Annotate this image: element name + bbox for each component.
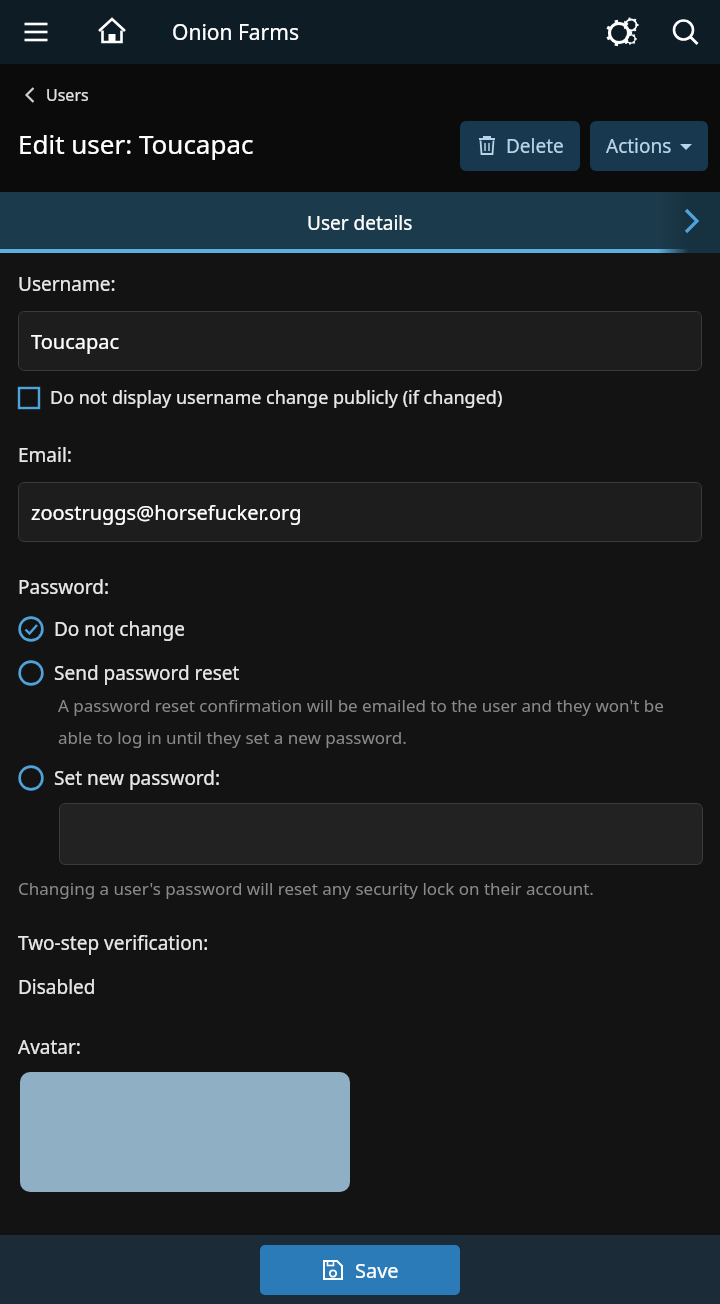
staticText: zoostruggs@horsefucker.org <box>31 499 302 526</box>
button[interactable]: Do not display username change publicly … <box>0 383 720 412</box>
staticText: Toucapac <box>31 328 120 355</box>
button[interactable]: Settings <box>598 9 644 55</box>
staticText: Avatar: <box>18 1034 81 1060</box>
staticText: A password reset confirmation will be em… <box>58 694 686 749</box>
staticText: Actions <box>606 133 672 159</box>
staticText: Password: <box>18 574 110 600</box>
button[interactable]: Menu <box>14 10 58 54</box>
button[interactable]: User details <box>0 192 720 253</box>
button[interactable]: zoostruggs@horsefucker.org <box>18 482 702 542</box>
staticText: Do not display username change publicly … <box>50 385 503 410</box>
button[interactable]: Save <box>260 1245 460 1295</box>
button[interactable]: More tabs <box>658 192 720 253</box>
staticText: Disabled <box>18 974 96 1000</box>
staticText: Username: <box>18 271 116 297</box>
button[interactable]: Set new password: <box>0 763 720 793</box>
staticText: Changing a user's password will reset an… <box>18 877 594 900</box>
staticText: User details <box>307 210 413 236</box>
button[interactable] <box>59 803 703 865</box>
button[interactable]: Search <box>662 9 708 55</box>
button[interactable]: Send password reset <box>0 658 720 688</box>
staticText: Two-step verification: <box>18 930 209 956</box>
staticText: Set new password: <box>54 765 221 791</box>
button[interactable]: Avatar <box>20 1072 350 1192</box>
staticText: Email: <box>18 442 72 468</box>
button[interactable]: Do not change <box>0 614 720 644</box>
button[interactable]: Users <box>18 84 89 106</box>
staticText: Edit user: Toucapac <box>18 126 254 161</box>
staticText: Do not change <box>54 616 186 642</box>
staticText: Onion Farms <box>172 18 299 47</box>
staticText: Save <box>355 1257 399 1284</box>
button[interactable]: Home <box>90 10 134 54</box>
button[interactable]: Actions <box>590 121 708 171</box>
button[interactable]: Delete <box>460 121 580 171</box>
button[interactable]: Toucapac <box>18 311 702 371</box>
staticText: Send password reset <box>54 660 240 686</box>
staticText: Delete <box>506 133 564 159</box>
staticText: Users <box>46 84 89 106</box>
